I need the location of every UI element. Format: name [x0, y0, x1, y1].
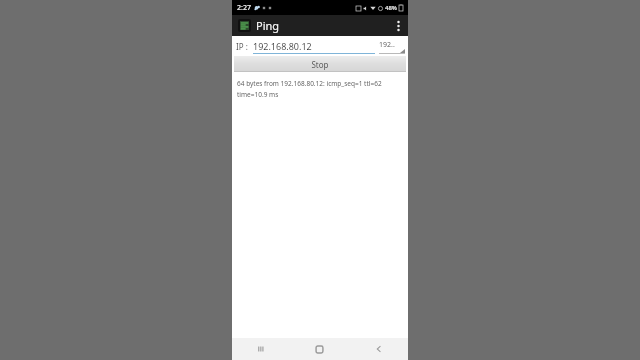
- button[interactable]: Stop: [234, 56, 406, 72]
- staticText: 48%: [385, 4, 397, 12]
- button[interactable]: 192.168.80.12: [253, 38, 375, 54]
- staticText: Ping: [256, 18, 280, 33]
- staticText: IP :: [236, 41, 248, 52]
- button[interactable]: More options: [388, 15, 408, 36]
- staticText: 192..: [379, 40, 395, 50]
- button[interactable]: Home: [290, 338, 349, 360]
- staticText: 64 bytes from 192.168.80.12: icmp_seq=1 …: [237, 79, 382, 88]
- button[interactable]: Back: [349, 338, 408, 360]
- staticText: 2:27: [237, 3, 251, 13]
- staticText: 192.168.80.12: [253, 40, 312, 52]
- staticText: time=10.9 ms: [237, 90, 279, 99]
- button[interactable]: Select host: [379, 38, 405, 54]
- staticText: Stop: [311, 59, 329, 70]
- button[interactable]: Recent apps: [232, 338, 290, 360]
